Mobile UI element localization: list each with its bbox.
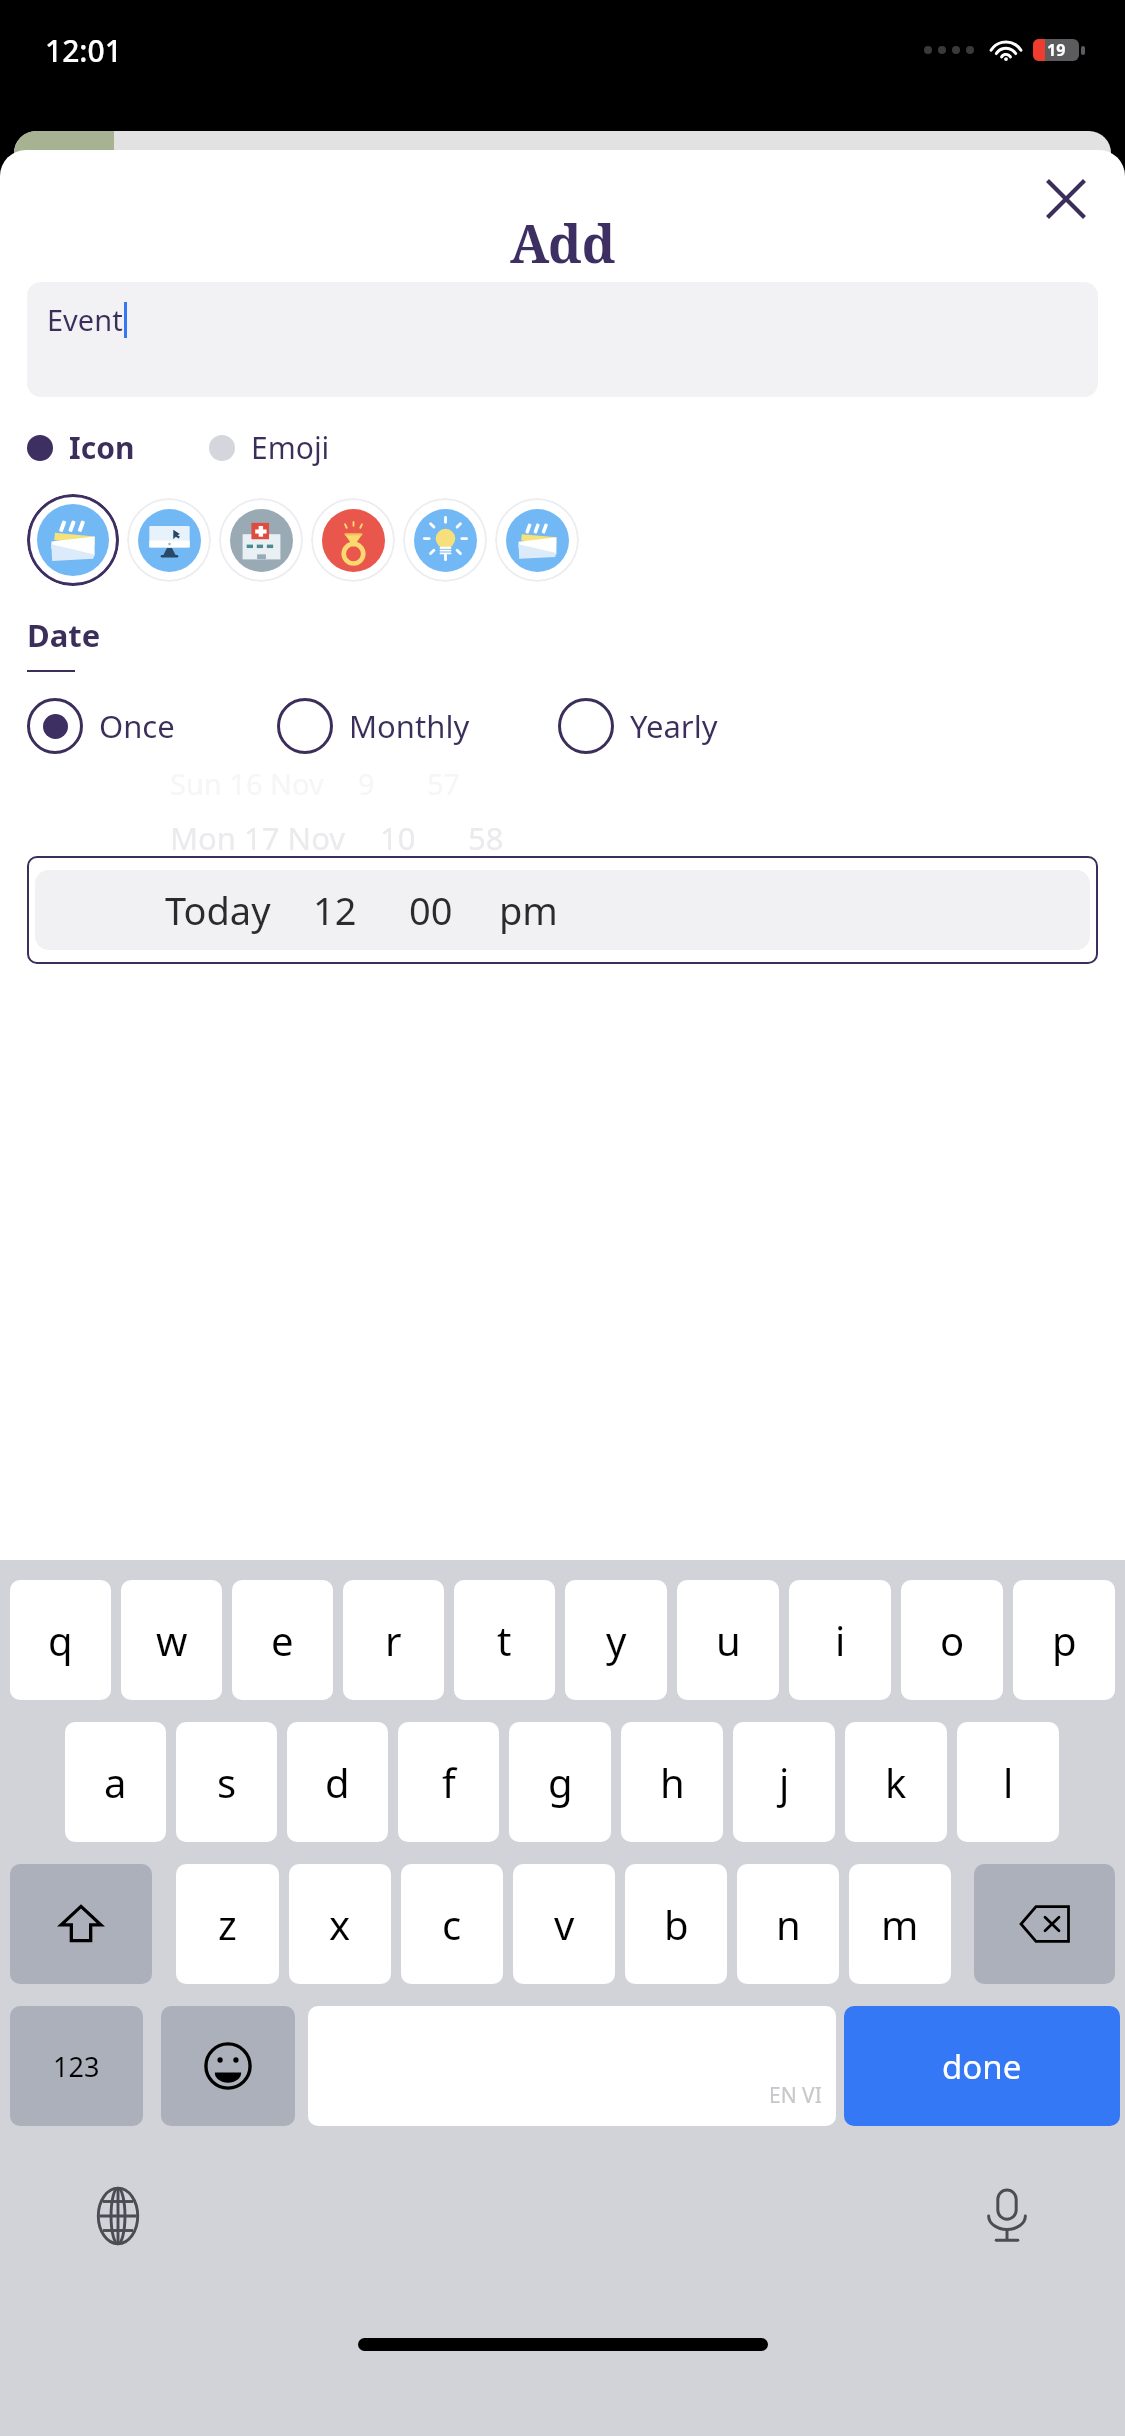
button[interactable]: Icon choice	[311, 498, 395, 582]
staticText: done	[942, 2044, 1022, 2089]
button[interactable]: Event	[27, 282, 1098, 397]
button[interactable]: Monthly	[277, 698, 470, 754]
staticText: Today	[165, 884, 271, 936]
staticText: 59	[466, 877, 504, 922]
button[interactable]: Numbers	[10, 2006, 143, 2126]
staticText: z	[218, 1897, 237, 1951]
button[interactable]: v	[513, 1864, 615, 1984]
staticText: Icon	[69, 427, 135, 468]
staticText: s	[217, 1755, 237, 1809]
button[interactable]: j	[733, 1722, 835, 1842]
button[interactable]: a	[65, 1722, 166, 1842]
staticText: t	[497, 1613, 512, 1667]
staticText: a	[104, 1755, 127, 1809]
button[interactable]: h	[621, 1722, 723, 1842]
button[interactable]: Yearly	[558, 698, 718, 754]
staticText: 10	[380, 817, 416, 859]
staticText: 00	[409, 884, 453, 936]
staticText: 123	[53, 2048, 100, 2085]
button[interactable]: Once	[27, 698, 175, 754]
button[interactable]: t	[454, 1580, 555, 1700]
button[interactable]: done	[844, 2006, 1120, 2126]
staticText: Date	[27, 614, 101, 656]
button[interactable]: Dictate	[969, 2178, 1045, 2254]
button[interactable]: q	[10, 1580, 111, 1700]
button[interactable]: i	[789, 1580, 891, 1700]
staticText: b	[664, 1897, 689, 1951]
button[interactable]: d	[287, 1722, 388, 1842]
button[interactable]: g	[509, 1722, 611, 1842]
staticText: e	[271, 1613, 294, 1667]
button[interactable]: Icon choice	[495, 498, 579, 582]
button[interactable]: Icon choice	[127, 498, 211, 582]
button[interactable]: f	[398, 1722, 499, 1842]
staticText: n	[776, 1897, 801, 1951]
staticText: Add	[510, 207, 616, 278]
button[interactable]: k	[845, 1722, 947, 1842]
button[interactable]: x	[289, 1864, 391, 1984]
button[interactable]: Icon	[27, 427, 135, 468]
staticText: Mon 17 Nov	[170, 817, 346, 859]
staticText: k	[885, 1755, 907, 1809]
staticText: x	[329, 1897, 351, 1951]
staticText: 57	[427, 764, 461, 803]
button[interactable]: w	[121, 1580, 222, 1700]
staticText: Yearly	[630, 705, 718, 747]
staticText: y	[606, 1613, 627, 1667]
button[interactable]: r	[343, 1580, 444, 1700]
button[interactable]: l	[957, 1722, 1059, 1842]
staticText: am	[550, 877, 600, 922]
staticText: l	[1003, 1755, 1014, 1809]
button[interactable]: y	[565, 1580, 667, 1700]
staticText: Event	[47, 300, 123, 339]
button[interactable]: b	[625, 1864, 727, 1984]
staticText: 12:01	[45, 30, 122, 71]
staticText: g	[548, 1755, 573, 1809]
staticText: 12	[313, 884, 357, 936]
staticText: c	[442, 1897, 462, 1951]
button[interactable]: n	[737, 1864, 839, 1984]
button[interactable]: u	[677, 1580, 779, 1700]
button[interactable]: Close	[1035, 168, 1097, 230]
staticText: j	[779, 1755, 790, 1809]
button[interactable]: EN VI	[308, 2006, 836, 2126]
staticText: f	[442, 1755, 456, 1809]
staticText: Tue 18 Nov	[170, 877, 342, 922]
button[interactable]: m	[849, 1864, 951, 1984]
button[interactable]: Icon choice	[219, 498, 303, 582]
staticText: p	[1052, 1613, 1077, 1667]
staticText: pm	[499, 884, 558, 936]
staticText: Monthly	[349, 705, 470, 747]
button[interactable]: Change keyboard	[80, 2178, 156, 2254]
staticText: w	[156, 1613, 188, 1667]
staticText: 58	[468, 817, 504, 859]
staticText: 19	[1047, 39, 1066, 61]
staticText: o	[940, 1613, 965, 1667]
staticText: 9	[358, 764, 375, 803]
staticText: Once	[99, 705, 175, 747]
staticText: h	[660, 1755, 685, 1809]
staticText: m	[881, 1897, 919, 1951]
button[interactable]: Emoji	[161, 2006, 295, 2126]
button[interactable]: Icon choice	[27, 494, 119, 586]
staticText: u	[716, 1613, 741, 1667]
staticText: i	[835, 1613, 846, 1667]
button[interactable]: s	[176, 1722, 277, 1842]
staticText: q	[48, 1613, 73, 1667]
staticText: EN VI	[769, 2081, 822, 2110]
button[interactable]: p	[1013, 1580, 1115, 1700]
staticText: Emoji	[251, 427, 330, 468]
staticText: v	[554, 1897, 575, 1951]
staticText: Sun 16 Nov	[170, 764, 324, 803]
button[interactable]: c	[401, 1864, 503, 1984]
button[interactable]: e	[232, 1580, 333, 1700]
button[interactable]: Today	[27, 856, 1098, 964]
button[interactable]: Emoji	[209, 427, 330, 468]
button[interactable]: z	[176, 1864, 279, 1984]
button[interactable]: o	[901, 1580, 1003, 1700]
button[interactable]: Shift	[10, 1864, 152, 1984]
button[interactable]: Icon choice	[403, 498, 487, 582]
button[interactable]: Backspace	[974, 1864, 1115, 1984]
staticText: 11	[376, 877, 414, 922]
staticText: r	[385, 1613, 402, 1667]
